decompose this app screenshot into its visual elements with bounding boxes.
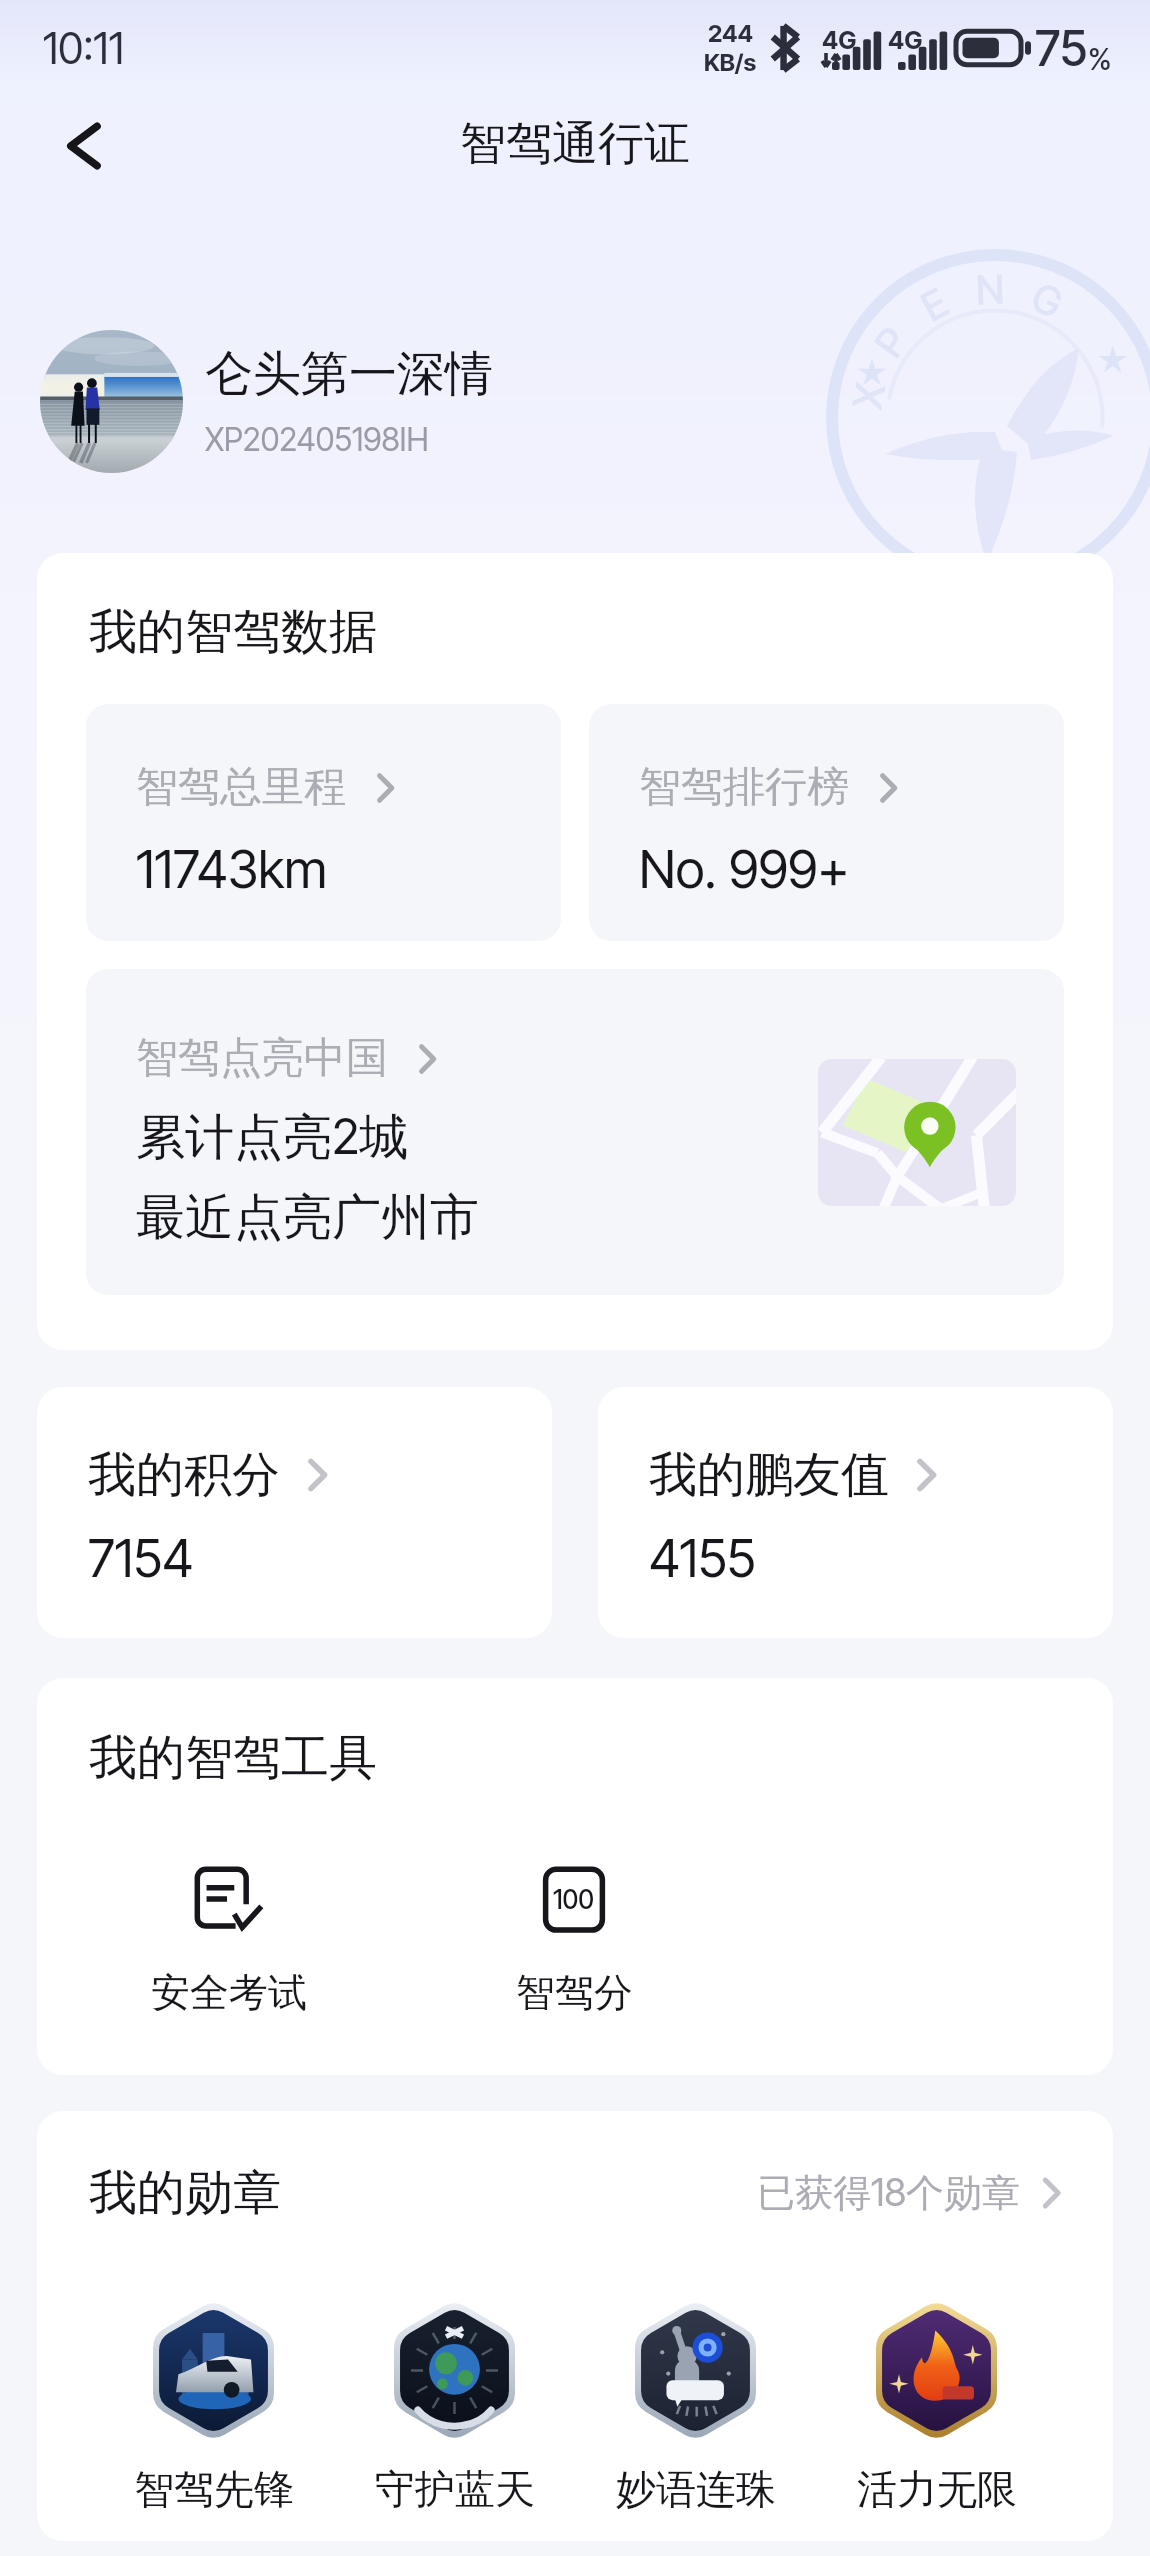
staticText: 4G [888,25,923,55]
staticText: 守护蓝天 [375,2464,535,2514]
staticText: 仑头第一深情 [205,344,493,404]
staticText: 妙语连珠 [616,2464,776,2514]
staticText: 75 [1035,19,1088,77]
staticText: 10:11 [43,22,124,74]
staticText: 智驾总里程 [136,761,346,814]
staticText: % [1088,41,1112,77]
staticText: XP202405198IH [205,420,429,459]
staticText: 4155 [649,1527,756,1590]
button[interactable]: 智驾总里程 [86,704,561,941]
staticText: 244 [708,19,753,48]
staticText: 100 [553,1884,595,1915]
staticText: 活力无限 [857,2464,1017,2514]
staticText: X [843,379,894,412]
staticText: G [1024,272,1070,328]
staticText: 我的智驾数据 [89,602,377,662]
staticText: 智驾通行证 [460,115,690,173]
staticText: 智驾排行榜 [639,761,849,814]
button[interactable]: 智驾排行榜 [589,704,1064,941]
staticText: 安全考试 [151,1968,307,2017]
button[interactable]: 活力无限 [816,2300,1057,2514]
staticText: 我的鹏友值 [649,1445,889,1505]
staticText: KB/s [704,48,757,77]
staticText: N [975,264,1006,313]
button[interactable]: 妙语连珠 [575,2300,816,2514]
staticText: 最近点亮广州市 [136,1187,479,1249]
button[interactable]: 已获得18个勋章 [757,2169,1069,2217]
staticText: 智驾先锋 [134,2464,294,2514]
button[interactable]: 守护蓝天 [334,2300,575,2514]
staticText: P [864,318,917,366]
staticText: 累计点亮2城 [136,1107,409,1169]
button[interactable]: 仑头第一深情 [40,330,1150,473]
button[interactable]: 智驾先锋 [93,2300,334,2514]
staticText: 11743km [136,838,328,901]
staticText: 已获得18个勋章 [757,2169,1021,2217]
staticText: 智驾点亮中国 [136,1032,388,1085]
staticText: 7154 [88,1527,194,1590]
staticText: E [913,277,956,331]
button[interactable]: 智驾点亮中国 [86,969,1064,1295]
button[interactable]: 我的鹏友值 [598,1387,1113,1638]
button[interactable]: 安全考试 [119,1868,339,2017]
staticText: 我的智驾工具 [89,1728,377,1788]
staticText: 我的勋章 [89,2163,281,2223]
staticText: 智驾分 [516,1968,633,2017]
staticText: 4G [822,25,857,55]
button[interactable]: 我的积分 [37,1387,552,1638]
button[interactable]: 100 [464,1868,684,2017]
button[interactable]: Back [33,96,133,196]
staticText: 我的积分 [88,1445,280,1505]
staticText: No. 999+ [639,838,850,901]
